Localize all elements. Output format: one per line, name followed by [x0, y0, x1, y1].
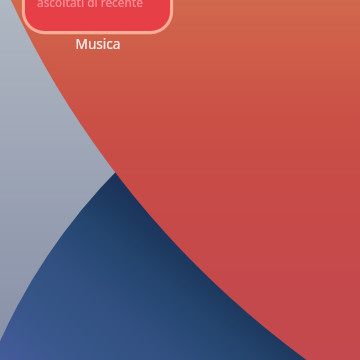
other: Musica widget	[22, 0, 173, 34]
staticText: Musica	[0, 34, 196, 53]
staticText: ascoltati di recente	[37, 0, 144, 10]
button[interactable]	[22, 0, 173, 34]
